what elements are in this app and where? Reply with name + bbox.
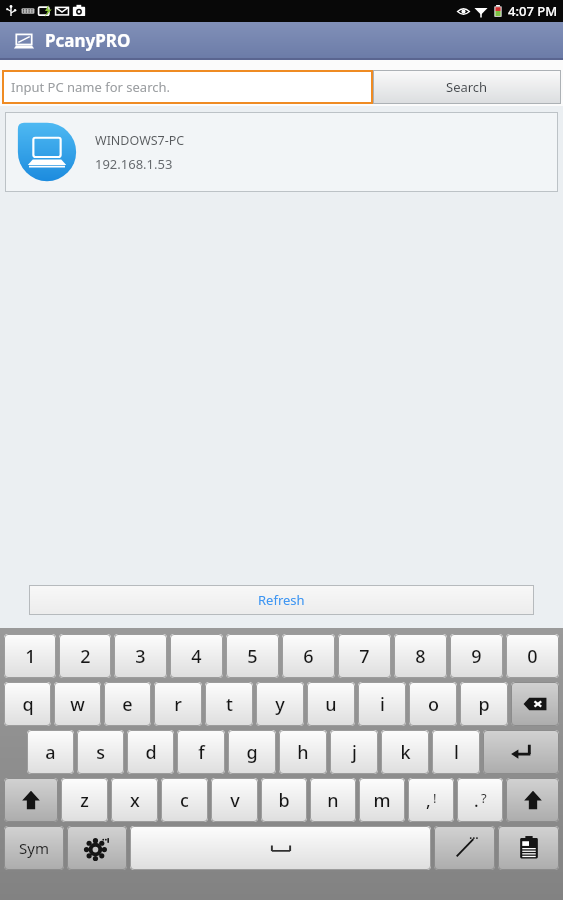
staticText: o	[428, 692, 439, 717]
button[interactable]: b	[261, 778, 307, 822]
staticText: m	[373, 788, 391, 813]
staticText: 3	[135, 644, 146, 669]
button[interactable]: Shift	[4, 778, 58, 822]
button[interactable]: 3	[114, 634, 167, 678]
staticText: d	[145, 740, 157, 765]
staticText: l	[454, 740, 459, 765]
staticText: 5	[247, 644, 258, 669]
button[interactable]: f	[177, 730, 225, 774]
button[interactable]: w	[54, 682, 101, 726]
staticText: t	[226, 692, 233, 717]
button[interactable]: h	[279, 730, 327, 774]
button[interactable]: q	[4, 682, 51, 726]
button[interactable]: i	[358, 682, 406, 726]
button[interactable]: p	[460, 682, 508, 726]
staticText: 9	[471, 644, 482, 669]
staticText: e	[122, 692, 133, 717]
button[interactable]: t	[205, 682, 253, 726]
staticText: 2	[80, 644, 91, 669]
button[interactable]: Enter	[483, 730, 559, 774]
staticText: y	[275, 692, 285, 717]
staticText: p	[478, 692, 490, 717]
button[interactable]: k	[381, 730, 429, 774]
staticText: v	[230, 788, 240, 813]
staticText: g	[246, 740, 258, 765]
staticText: 0	[527, 644, 538, 669]
button[interactable]: e	[104, 682, 151, 726]
staticText: Sym	[19, 838, 49, 858]
staticText: k	[400, 740, 411, 765]
button[interactable]: l	[432, 730, 480, 774]
staticText: Refresh	[258, 591, 305, 609]
button[interactable]: j	[330, 730, 378, 774]
staticText: 4:07 PM	[508, 2, 558, 20]
button[interactable]: n	[310, 778, 356, 822]
button[interactable]: 5	[226, 634, 279, 678]
staticText: 1	[25, 644, 36, 669]
button[interactable]: 2	[59, 634, 111, 678]
button[interactable]: 0	[506, 634, 559, 678]
button[interactable]: s	[77, 730, 124, 774]
button[interactable]: a	[27, 730, 74, 774]
staticText: WINDOWS7-PC	[95, 132, 185, 149]
staticText: .	[474, 789, 479, 812]
button[interactable]: 7	[338, 634, 391, 678]
staticText: Input PC name for search.	[11, 78, 171, 96]
staticText: i	[380, 692, 385, 717]
staticText: !	[433, 789, 437, 807]
button[interactable]: v	[211, 778, 258, 822]
button[interactable]: 1	[4, 634, 56, 678]
button[interactable]: Sym	[4, 826, 64, 870]
staticText: 192.168.1.53	[95, 155, 173, 173]
button[interactable]: 9	[450, 634, 503, 678]
staticText: q	[22, 692, 34, 717]
button[interactable]: 6	[282, 634, 335, 678]
button[interactable]: c	[161, 778, 208, 822]
staticText: 7	[359, 644, 370, 669]
button[interactable]: m	[359, 778, 405, 822]
button[interactable]: Settings	[67, 826, 127, 870]
button[interactable]: z	[61, 778, 108, 822]
button[interactable]: Input PC name for search.	[2, 70, 373, 104]
staticText: Search	[446, 78, 488, 96]
button[interactable]: r	[154, 682, 202, 726]
button[interactable]: Search	[373, 70, 561, 104]
button[interactable]: g	[228, 730, 276, 774]
staticText: 6	[303, 644, 314, 669]
staticText: n	[327, 788, 339, 813]
button[interactable]: d	[127, 730, 174, 774]
button[interactable]: WINDOWS7-PC	[5, 112, 558, 192]
staticText: a	[45, 740, 56, 765]
staticText: j	[352, 740, 357, 765]
button[interactable]: .	[457, 778, 503, 822]
button[interactable]: Refresh	[29, 585, 534, 615]
staticText: b	[278, 788, 290, 813]
staticText: u	[325, 692, 337, 717]
staticText: PcanyPRO	[45, 29, 131, 52]
button[interactable]: Shift	[506, 778, 559, 822]
button[interactable]: Clipboard	[498, 826, 559, 870]
button[interactable]: 8	[394, 634, 447, 678]
button[interactable]: y	[256, 682, 304, 726]
button[interactable]: Language	[434, 826, 495, 870]
staticText: f	[198, 740, 205, 765]
staticText: s	[96, 740, 105, 765]
staticText: w	[70, 692, 85, 717]
staticText: ,	[426, 789, 431, 812]
button[interactable]: x	[111, 778, 158, 822]
staticText: ?	[481, 789, 487, 807]
staticText: c	[180, 788, 189, 813]
staticText: 8	[415, 644, 426, 669]
button[interactable]: Space	[130, 826, 431, 870]
staticText: z	[80, 788, 89, 813]
button[interactable]: u	[307, 682, 355, 726]
button[interactable]: 4	[170, 634, 223, 678]
staticText: r	[174, 692, 182, 717]
button[interactable]: ,	[408, 778, 454, 822]
button[interactable]: Backspace	[511, 682, 559, 726]
staticText: x	[130, 788, 140, 813]
staticText: h	[297, 740, 309, 765]
button[interactable]: o	[409, 682, 457, 726]
staticText: 4	[191, 644, 202, 669]
